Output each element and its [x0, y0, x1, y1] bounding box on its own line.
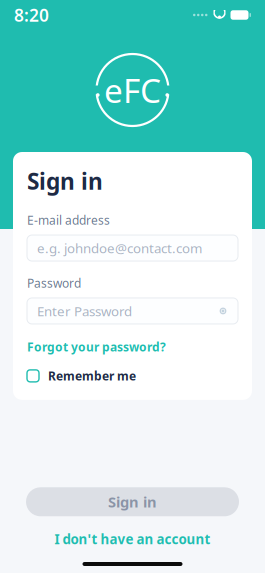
- staticText: Sign in: [108, 492, 157, 512]
- staticText: 8:20: [14, 3, 49, 26]
- staticText: Password: [27, 275, 81, 291]
- staticText: eFC: [104, 68, 161, 112]
- button[interactable]: Sign in: [26, 487, 239, 516]
- staticText: e.g. johndoe@contact.com: [37, 239, 202, 257]
- staticText: Remember me: [48, 368, 136, 384]
- staticText: E-mail address: [27, 212, 110, 228]
- staticText: Sign in: [27, 166, 103, 196]
- button[interactable]: Forgot your password?: [27, 337, 166, 357]
- staticText: Enter Password: [37, 302, 132, 320]
- staticText: I don't have an account: [54, 530, 210, 548]
- staticText: Forgot your password?: [27, 339, 166, 355]
- button[interactable]: I don't have an account: [42, 516, 222, 552]
- button[interactable]: Remember me: [27, 366, 136, 386]
